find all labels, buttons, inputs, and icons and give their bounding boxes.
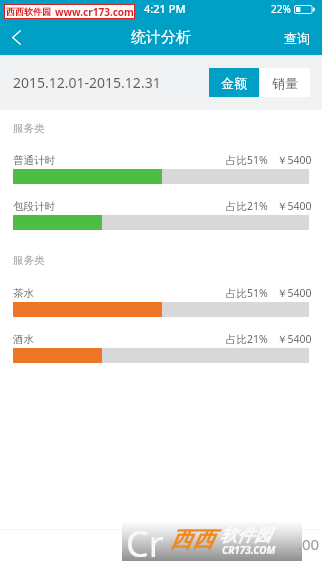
staticText: 西西: [170, 526, 214, 554]
staticText: 占比51%: [226, 153, 268, 167]
staticText: 22%: [271, 2, 291, 16]
staticText: 统计分析: [131, 28, 191, 47]
staticText: 西西软件园: [6, 6, 51, 17]
button[interactable]: 酒水: [13, 332, 312, 363]
staticText: 酒水: [13, 333, 34, 346]
button[interactable]: 金额: [209, 68, 259, 97]
staticText: ￥5400: [277, 332, 312, 346]
staticText: 茶水: [13, 287, 34, 300]
staticText: Cr: [126, 519, 164, 558]
button[interactable]: 普通计时: [13, 153, 312, 184]
staticText: ￥5400: [277, 153, 312, 167]
button[interactable]: 茶水: [13, 286, 312, 317]
staticText: ￥5400: [277, 199, 312, 213]
staticText: 查询: [284, 30, 310, 46]
staticText: .00: [298, 534, 320, 554]
staticText: 占比51%: [226, 286, 268, 300]
staticText: 软件园: [220, 525, 271, 546]
staticText: 2015.12.01-2015.12.31: [13, 73, 161, 92]
staticText: CR173.COM: [222, 543, 276, 557]
staticText: 金额: [221, 75, 247, 91]
staticText: 服务类: [13, 254, 45, 267]
button[interactable]: 2015.12.01-2015.12.31: [0, 55, 195, 110]
staticText: 4:21 PM: [144, 1, 186, 16]
button[interactable]: Back: [0, 20, 33, 55]
staticText: 销量: [272, 75, 298, 91]
staticText: ￥5400: [277, 286, 312, 300]
staticText: 包段计时: [13, 200, 55, 213]
staticText: 普通计时: [13, 154, 55, 167]
button[interactable]: 查询: [270, 20, 322, 55]
button[interactable]: 包段计时: [13, 199, 312, 230]
button[interactable]: 销量: [259, 68, 310, 97]
staticText: 服务类: [13, 122, 45, 135]
staticText: 占比21%: [226, 199, 268, 213]
staticText: www.cr173.com: [55, 5, 134, 19]
staticText: 占比21%: [226, 332, 268, 346]
